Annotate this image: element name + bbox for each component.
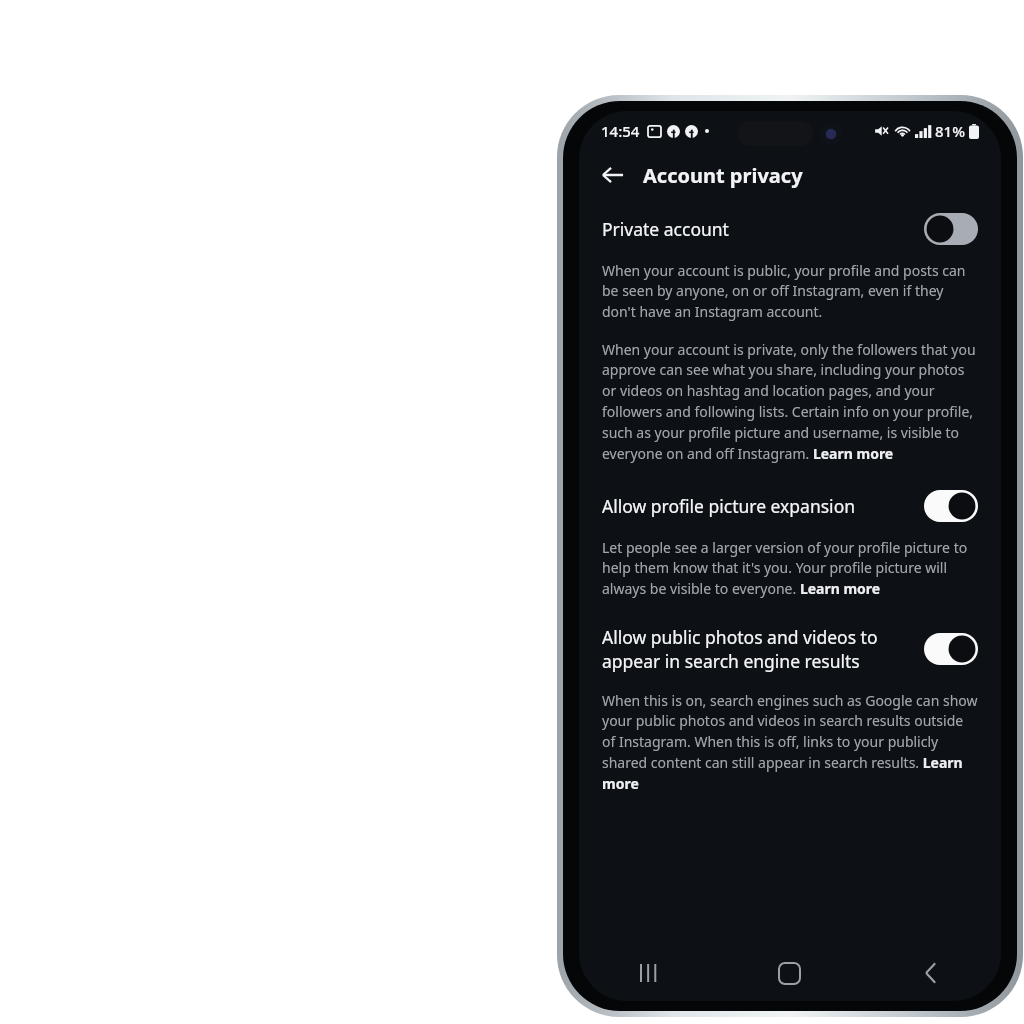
button[interactable]: Recent apps xyxy=(579,945,719,1001)
staticText: 14:54 xyxy=(601,121,640,141)
button[interactable]: Toggle on xyxy=(924,490,978,522)
staticText: 81% xyxy=(935,121,965,141)
staticText: Account privacy xyxy=(643,162,803,189)
staticText: When your account is public, your profil… xyxy=(602,261,978,322)
button[interactable]: Let people see a larger version of your … xyxy=(602,538,978,599)
button[interactable]: Back xyxy=(591,153,635,197)
button[interactable]: Back xyxy=(860,945,1001,1001)
staticText: Allow profile picture expansion xyxy=(602,494,908,518)
button[interactable]: Toggle off xyxy=(924,213,978,245)
button[interactable]: Allow public photos and videos to appear… xyxy=(602,625,978,673)
button[interactable]: Home xyxy=(719,945,860,1001)
button[interactable]: Private account xyxy=(602,213,978,245)
button[interactable]: Toggle on xyxy=(924,633,978,665)
button[interactable]: When your account is private, only the f… xyxy=(602,340,978,464)
staticText: Private account xyxy=(602,217,908,241)
staticText: Allow public photos and videos to appear… xyxy=(602,625,908,673)
button[interactable]: Allow profile picture expansion xyxy=(602,490,978,522)
button[interactable]: When this is on, search engines such as … xyxy=(602,691,978,794)
